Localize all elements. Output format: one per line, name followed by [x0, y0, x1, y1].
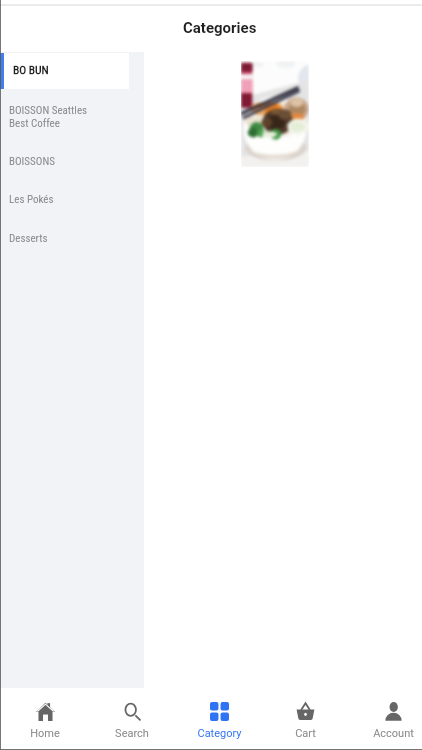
staticText: Les Pokés	[9, 193, 54, 206]
button[interactable]: Bo Bun dish	[241, 61, 309, 167]
staticText: Category	[197, 727, 242, 740]
button[interactable]: Category	[175, 688, 262, 750]
staticText: Account	[373, 727, 414, 740]
button[interactable]: Search	[88, 688, 175, 750]
button[interactable]: BO BUN	[0, 53, 144, 89]
button[interactable]: Desserts	[0, 227, 144, 249]
staticText: BOISSONS	[9, 155, 55, 168]
button[interactable]: Les Pokés	[0, 188, 144, 210]
staticText: Best Coffee	[9, 117, 60, 130]
staticText: BO BUN	[13, 63, 49, 76]
button[interactable]: Account	[349, 688, 422, 750]
staticText: Categories	[183, 19, 257, 37]
staticText: Search	[115, 727, 149, 740]
staticText: Home	[30, 727, 60, 740]
staticText: BOISSON Seattles	[9, 104, 88, 117]
button[interactable]: BOISSONS	[0, 150, 144, 172]
button[interactable]: BOISSON Seattles	[0, 104, 144, 130]
staticText: Desserts	[9, 232, 48, 245]
button[interactable]: Cart	[262, 688, 349, 750]
staticText: Cart	[295, 727, 316, 740]
button[interactable]: Home	[0, 688, 88, 750]
